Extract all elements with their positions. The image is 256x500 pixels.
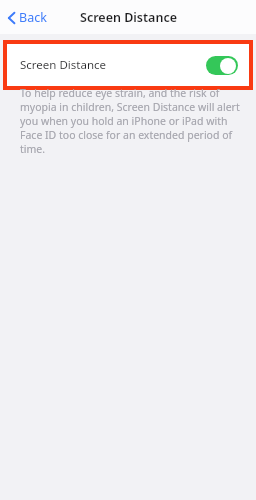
staticText: Screen Distance (20, 57, 107, 73)
button[interactable]: Screen Distance toggle, on (206, 56, 238, 75)
staticText: To help reduce eye strain, and the risk … (20, 86, 240, 156)
staticText: Screen Distance (80, 9, 177, 26)
button[interactable]: Screen Distance (7, 44, 249, 86)
button[interactable]: Back (6, 5, 49, 30)
staticText: Back (19, 9, 47, 26)
